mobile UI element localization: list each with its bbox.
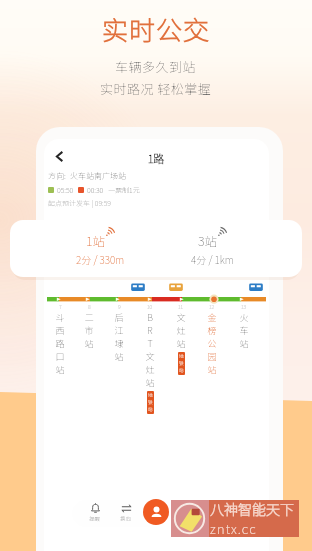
staticText: 换向 [120, 515, 132, 523]
staticText: 西 [55, 324, 65, 337]
button[interactable]: 10 [142, 303, 158, 414]
staticText: 11 [178, 303, 184, 310]
staticText: 方向: [48, 170, 66, 182]
staticText: 站 [176, 337, 186, 350]
staticText: 地 [148, 392, 153, 399]
button[interactable]: Back [50, 147, 68, 165]
staticText: 江 [114, 324, 124, 337]
staticText: 口 [55, 350, 65, 363]
staticText: 9 [118, 303, 121, 310]
staticText: zntx.cc [210, 519, 257, 538]
button[interactable]: Locate [143, 499, 169, 525]
staticText: 00:30 [87, 185, 104, 195]
staticText: 05:50 [57, 185, 74, 195]
staticText: 站 [179, 367, 184, 374]
staticText: 铁 [179, 360, 184, 367]
staticText: 埭 [114, 337, 124, 350]
staticText: 园 [207, 350, 217, 363]
staticText: 文 [176, 311, 186, 324]
staticText: 一票制1元 [108, 185, 140, 195]
staticText: 13 [241, 303, 247, 310]
staticText: 公 [207, 337, 217, 350]
staticText: 金 [207, 311, 217, 324]
staticText: 起点预计发车 | 09:59 [48, 198, 111, 208]
staticText: 4分 / 1km [191, 252, 234, 266]
button[interactable]: 11 [173, 303, 189, 375]
staticText: 3站 [198, 231, 218, 249]
staticText: 2分 / 330m [76, 252, 125, 266]
staticText: 火 [239, 311, 249, 324]
staticText: 车 [239, 324, 249, 337]
staticText: 市 [84, 324, 94, 337]
staticText: 文 [145, 350, 155, 363]
staticText: 榜 [207, 324, 217, 337]
button[interactable]: 3站 [172, 220, 252, 277]
staticText: 后 [114, 311, 124, 324]
staticText: 12 [209, 303, 215, 310]
button[interactable]: 提醒 [82, 503, 108, 523]
staticText: 站 [207, 363, 217, 376]
staticText: 8 [88, 303, 91, 310]
button[interactable]: 13 [236, 303, 252, 350]
button[interactable]: 7 [52, 303, 68, 376]
button[interactable]: 9 [111, 303, 127, 363]
staticText: 灶 [176, 324, 186, 337]
staticText: 实时路况 轻松掌握 [100, 79, 212, 98]
staticText: 站 [114, 350, 124, 363]
staticText: B [147, 311, 153, 324]
button[interactable]: 1站 [10, 220, 302, 277]
staticText: 地 [179, 353, 184, 360]
staticText: 实时公交 [102, 10, 211, 48]
staticText: 站 [145, 376, 155, 389]
staticText: 提醒 [89, 515, 101, 523]
staticText: 火车站南广场站 [70, 170, 126, 182]
button[interactable]: 12 [204, 303, 220, 376]
staticText: 站 [84, 337, 94, 350]
staticText: R [147, 324, 153, 337]
button[interactable]: 换向 [113, 503, 139, 523]
button[interactable]: 8 [81, 303, 97, 350]
staticText: 八神智能天下 [210, 499, 294, 519]
staticText: 7 [59, 303, 62, 310]
staticText: 车辆多久到站 [115, 57, 197, 76]
staticText: 1路 [144, 150, 168, 166]
staticText: 10 [147, 303, 153, 310]
staticText: 1站 [86, 231, 106, 249]
staticText: 二 [84, 311, 94, 324]
staticText: 路 [55, 337, 65, 350]
staticText: 灶 [145, 363, 155, 376]
staticText: 斗 [55, 311, 65, 324]
staticText: 站 [239, 337, 249, 350]
staticText: 站 [55, 363, 65, 376]
staticText: T [147, 337, 153, 350]
button[interactable]: 1站 [60, 220, 140, 277]
staticText: 铁 [148, 399, 153, 406]
staticText: 站 [148, 406, 153, 413]
